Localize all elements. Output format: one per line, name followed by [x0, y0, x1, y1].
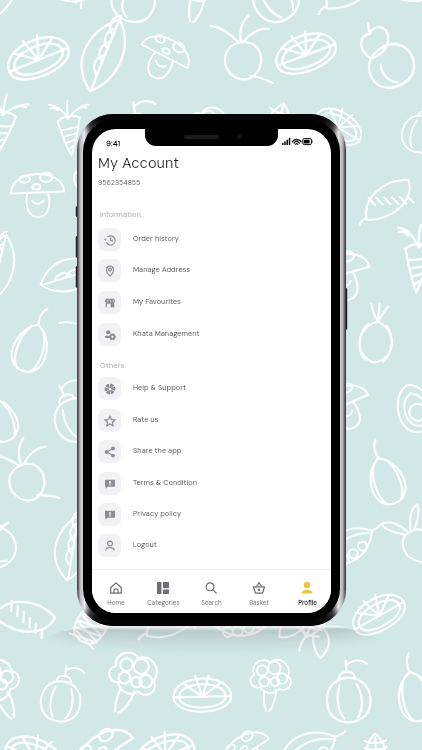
button[interactable]: Manage Address: [92, 255, 331, 285]
staticText: Terms & Condition: [133, 478, 198, 488]
staticText: Help & Support: [133, 383, 187, 393]
staticText: Categories: [147, 599, 180, 607]
staticText: Rate us: [133, 415, 159, 425]
button[interactable]: My Favourites: [92, 287, 331, 317]
staticText: Others: [100, 360, 125, 370]
staticText: Home: [107, 599, 125, 607]
staticText: Profile: [298, 599, 317, 607]
staticText: Privacy policy: [133, 509, 182, 519]
button[interactable]: Privacy policy: [92, 499, 331, 529]
button[interactable]: Terms & Condition: [92, 468, 331, 498]
button[interactable]: Home: [92, 570, 139, 613]
staticText: Khata Management: [133, 329, 200, 339]
button[interactable]: Profile: [283, 570, 331, 613]
button[interactable]: Categories: [139, 570, 187, 613]
staticText: Manage Address: [133, 265, 191, 275]
button[interactable]: Help & Support: [92, 373, 331, 403]
staticText: My Favourites: [133, 297, 181, 307]
button[interactable]: Logout: [92, 530, 331, 560]
button[interactable]: Share the app: [92, 436, 331, 466]
staticText: Search: [201, 599, 222, 607]
staticText: Logout: [133, 540, 157, 550]
staticText: Basket: [249, 599, 269, 607]
staticText: My Account: [98, 154, 180, 173]
staticText: information: [100, 209, 141, 219]
button[interactable]: Search: [187, 570, 235, 613]
staticText: 9562354855: [98, 178, 141, 187]
button[interactable]: Khata Management: [92, 319, 331, 349]
button[interactable]: Basket: [235, 570, 283, 613]
button[interactable]: Order history: [92, 224, 331, 254]
staticText: Share the app: [133, 446, 182, 456]
staticText: 9:41: [106, 138, 121, 148]
button[interactable]: Rate us: [92, 405, 331, 435]
staticText: Order history: [133, 234, 179, 244]
